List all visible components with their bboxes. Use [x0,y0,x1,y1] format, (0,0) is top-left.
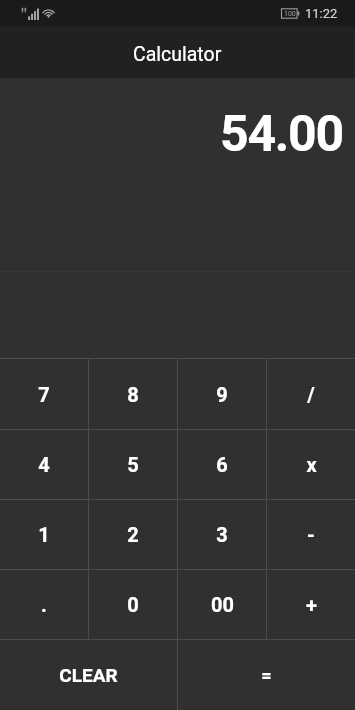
button[interactable]: 8 [89,359,177,429]
button[interactable]: 7 [0,359,88,429]
staticText: 9 [216,383,228,406]
staticText: 1 [38,523,50,546]
staticText: 8 [127,383,139,406]
staticText: = [261,665,272,686]
staticText: 3 [216,523,228,546]
staticText: - [307,523,315,546]
staticText: 54.00 [220,105,343,164]
button[interactable]: CLEAR [0,640,177,710]
button[interactable]: - [267,500,355,569]
staticText: x [306,453,317,476]
button[interactable]: 5 [89,430,177,499]
button[interactable]: x [267,430,355,499]
button[interactable]: 0 [89,570,177,639]
staticText: Calculator [133,43,222,66]
button[interactable]: / [267,359,355,429]
button[interactable]: 3 [178,500,266,569]
button[interactable]: 00 [178,570,266,639]
staticText: 2 [127,523,139,546]
staticText: 00 [211,593,234,616]
other: Mobile signal strength [21,7,39,20]
staticText: CLEAR [59,664,118,686]
button[interactable]: 4 [0,430,88,499]
staticText: 0 [127,593,139,616]
other: Wi-Fi connected [42,6,55,19]
button[interactable]: + [267,570,355,639]
button[interactable]: 2 [89,500,177,569]
staticText: / [307,383,315,406]
staticText: 6 [216,453,228,476]
other: Battery 100 percent [281,8,300,19]
button[interactable]: = [178,640,355,710]
staticText: 5 [127,453,139,476]
staticText: + [306,593,317,616]
staticText: 100 [284,10,296,18]
button[interactable]: . [0,570,88,639]
staticText: 11:22 [305,6,338,21]
button[interactable]: 6 [178,430,266,499]
button[interactable]: 1 [0,500,88,569]
staticText: 4 [38,453,50,476]
staticText: . [41,593,47,616]
staticText: 7 [38,383,50,406]
button[interactable]: 9 [178,359,266,429]
